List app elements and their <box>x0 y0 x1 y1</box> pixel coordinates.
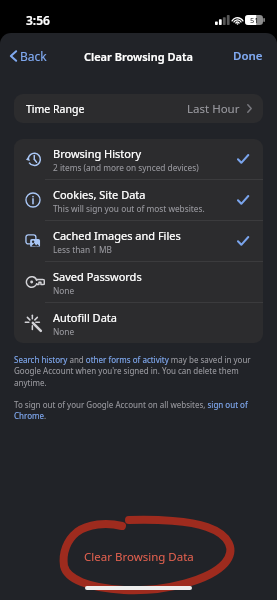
button[interactable]: Time Range <box>14 94 263 123</box>
staticText: None <box>53 326 75 337</box>
button[interactable]: Saved Passwords <box>14 262 263 302</box>
staticText: Browsing History <box>53 146 142 161</box>
staticText: Last Hour <box>187 101 240 117</box>
button[interactable]: Done <box>219 45 277 67</box>
staticText: None <box>53 285 75 296</box>
button[interactable]: Cookies, Site Data <box>14 180 263 220</box>
staticText: Back <box>20 48 47 64</box>
staticText: Clear Browsing Data <box>84 549 194 565</box>
staticText: This will sign you out of most websites. <box>53 203 205 214</box>
staticText: Search history and other forms of activi… <box>14 354 263 389</box>
staticText: 2 items (and more on synced devices) <box>53 162 199 173</box>
staticText: Cookies, Site Data <box>53 187 146 202</box>
button[interactable]: Clear Browsing Data <box>0 542 277 572</box>
staticText: Autofill Data <box>53 310 117 325</box>
button[interactable]: Cached Images and Files <box>14 221 263 261</box>
staticText: Clear Browsing Data <box>84 49 193 64</box>
staticText: Done <box>233 48 263 64</box>
staticText: Time Range <box>26 102 85 116</box>
staticText: 51 <box>250 15 259 25</box>
button[interactable]: Autofill Data <box>14 303 263 343</box>
staticText: To sign out of your Google Account on al… <box>14 399 263 422</box>
staticText: Saved Passwords <box>53 269 142 284</box>
staticText: Cached Images and Files <box>53 228 181 243</box>
staticText: Less than 1 MB <box>53 244 113 255</box>
staticText: 3:56 <box>26 12 50 28</box>
button[interactable]: Back <box>0 45 55 67</box>
button[interactable]: Browsing History <box>14 139 263 179</box>
